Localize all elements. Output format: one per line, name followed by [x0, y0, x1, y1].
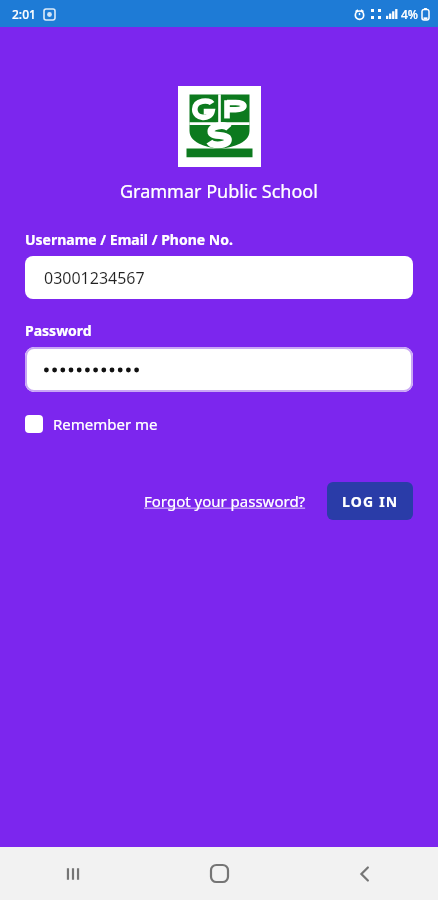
button[interactable] — [25, 347, 413, 392]
staticText: Remember me — [53, 414, 158, 434]
button[interactable]: Recent apps — [0, 847, 146, 900]
staticText: LOG IN — [342, 492, 399, 511]
staticText: 03001234567 — [44, 267, 145, 289]
button[interactable]: Back — [292, 847, 438, 900]
button[interactable]: LOG IN — [327, 482, 413, 520]
staticText: Forgot your password? — [144, 491, 306, 511]
staticText: Password — [25, 321, 92, 340]
staticText: Grammar Public School — [120, 179, 318, 204]
button[interactable]: Remember me — [25, 414, 158, 434]
staticText: Username / Email / Phone No. — [25, 230, 233, 249]
button[interactable]: 03001234567 — [25, 256, 413, 299]
button[interactable]: Home — [146, 847, 292, 900]
button[interactable]: Forgot your password? — [140, 487, 310, 515]
staticText: 4% — [401, 6, 419, 22]
staticText: 2:01 — [12, 6, 36, 22]
